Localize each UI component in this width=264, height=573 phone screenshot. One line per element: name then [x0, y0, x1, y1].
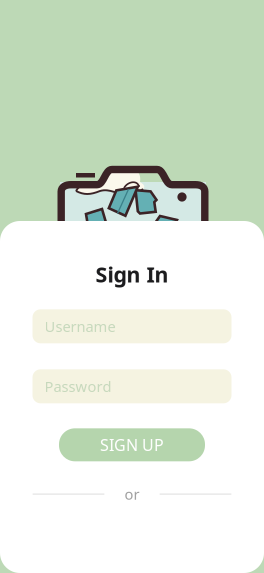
- staticText: SIGN UP: [100, 434, 164, 455]
- button[interactable]: Username: [32, 309, 231, 343]
- staticText: Username: [44, 317, 115, 336]
- button[interactable]: Password: [32, 369, 231, 403]
- staticText: Sign In: [95, 260, 168, 288]
- staticText: or: [124, 484, 139, 504]
- staticText: Password: [44, 377, 111, 396]
- button[interactable]: SIGN UP: [59, 428, 205, 461]
